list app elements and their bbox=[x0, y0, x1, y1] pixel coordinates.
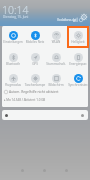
staticText: Dienstag, 15. Juni bbox=[3, 15, 29, 19]
staticText: WLAN bbox=[45, 40, 67, 44]
button[interactable]: Synchronisier. bbox=[67, 69, 89, 91]
staticText: Flugmodus bbox=[2, 83, 24, 87]
staticText: Stummschalt. bbox=[45, 62, 67, 66]
staticText: Vodafone.de bbox=[57, 18, 76, 22]
button[interactable]: Mobiles Netz bbox=[24, 26, 46, 48]
button[interactable]: Stummschalt. bbox=[45, 48, 67, 70]
staticText: Taschenlampe bbox=[24, 83, 46, 87]
button[interactable]: Einstellungen bbox=[2, 26, 24, 48]
button[interactable]: WLAN bbox=[45, 26, 67, 48]
button[interactable]: Flugmodus bbox=[2, 69, 24, 91]
staticText: Helligkeit bbox=[67, 40, 89, 44]
button[interactable]: Taschenlampe bbox=[24, 69, 46, 91]
staticText: Bildschirm bbox=[45, 83, 67, 87]
staticText: Bluetooth bbox=[2, 62, 24, 66]
staticText: Synchronisier. bbox=[67, 83, 89, 87]
staticText: GPS bbox=[24, 62, 46, 66]
staticText: Energiespar. bbox=[67, 62, 89, 66]
button[interactable] bbox=[2, 110, 88, 120]
button[interactable]: Bildschirm bbox=[45, 69, 67, 91]
staticText: ▸ Mo 14.548 / Aktiviert 1.0 GB bbox=[4, 98, 46, 102]
staticText: Einstellungen bbox=[2, 40, 24, 44]
staticText: Mobiles Netz bbox=[24, 40, 46, 44]
staticText: 10:14 bbox=[2, 3, 29, 17]
button[interactable]: Settings bbox=[81, 14, 87, 20]
button[interactable]: Energiespar. bbox=[67, 48, 89, 70]
staticText: Autom. Regelhilfe nicht aktiviert bbox=[9, 89, 59, 93]
button[interactable]: GPS bbox=[24, 48, 46, 70]
button[interactable]: Bluetooth bbox=[2, 48, 24, 70]
button[interactable]: Helligkeit bbox=[67, 26, 89, 48]
